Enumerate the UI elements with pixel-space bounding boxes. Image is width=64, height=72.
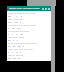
staticText: And friends just can't be found xyxy=(8,24,36,27)
staticText: C G7 Am xyxy=(8,27,21,30)
staticText: When the evening falls so hard xyxy=(8,12,36,15)
staticText: When you're weary feeling small xyxy=(8,42,37,45)
staticText: Like a bridge over water xyxy=(8,30,30,33)
staticText: Am Dm G7 xyxy=(8,57,21,60)
staticText: I will dry them all xyxy=(8,54,24,57)
staticText: I will lay me down xyxy=(8,36,24,39)
staticText: I will comfort you xyxy=(8,18,24,21)
button[interactable]: Bridge Over Troubled Water xyxy=(7,6,51,11)
staticText: C F G C xyxy=(8,51,22,54)
staticText: F C G Am xyxy=(8,33,24,36)
staticText: When tears are in your eyes xyxy=(8,48,33,51)
staticText: Dm Em F xyxy=(8,21,22,24)
staticText: Em F C xyxy=(8,39,19,42)
staticText: Bridge Over Troubled Water xyxy=(9,7,40,10)
staticText: Am C G xyxy=(8,15,23,18)
staticText: G7 Am Dm G xyxy=(8,45,24,48)
